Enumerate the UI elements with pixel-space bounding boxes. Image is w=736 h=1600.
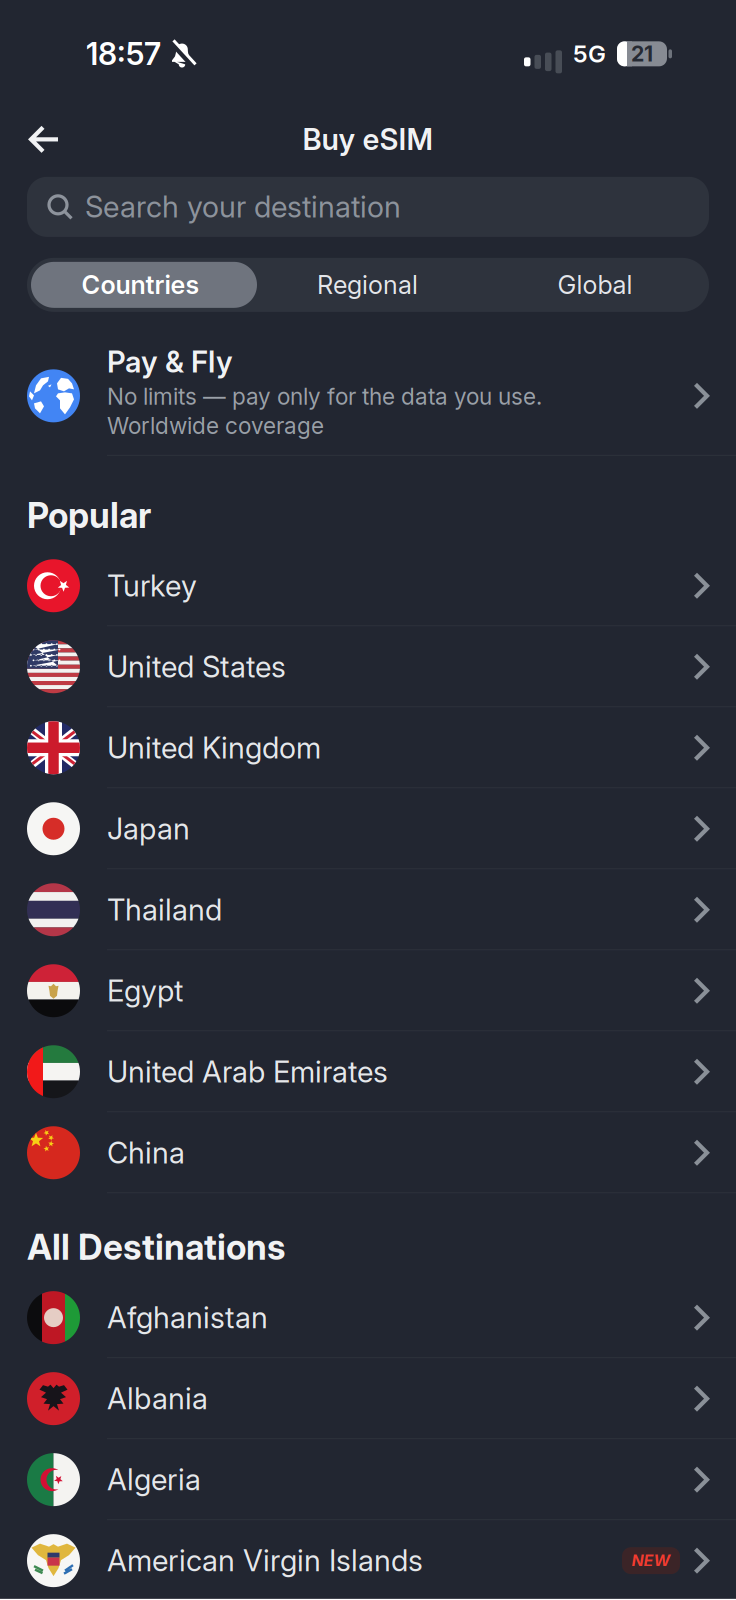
staticText: Global: [557, 270, 632, 300]
button[interactable]: China: [0, 1112, 736, 1193]
button[interactable]: American Virgin Islands: [0, 1520, 736, 1600]
button[interactable]: Thailand: [0, 869, 736, 950]
staticText: Pay & Fly: [107, 345, 233, 379]
button[interactable]: Algeria: [0, 1439, 736, 1520]
staticText: United Arab Emirates: [107, 1054, 388, 1089]
staticText: Afghanistan: [107, 1300, 268, 1335]
button[interactable]: Egypt: [0, 950, 736, 1031]
button[interactable]: Afghanistan: [0, 1277, 736, 1358]
staticText: Popular: [27, 495, 151, 536]
button[interactable]: Japan: [0, 788, 736, 869]
staticText: NEW: [631, 1551, 670, 1570]
staticText: China: [107, 1135, 185, 1170]
staticText: Egypt: [107, 973, 183, 1008]
button[interactable]: Regional: [254, 270, 481, 300]
staticText: United States: [107, 649, 286, 684]
staticText: Turkey: [107, 568, 197, 603]
staticText: Japan: [107, 811, 190, 846]
staticText: 21: [631, 41, 653, 66]
staticText: Worldwide coverage: [107, 412, 324, 439]
staticText: United Kingdom: [107, 730, 321, 765]
staticText: 5G: [573, 40, 606, 68]
staticText: Countries: [81, 270, 199, 300]
staticText: Regional: [317, 270, 418, 300]
staticText: No limits — pay only for the data you us…: [107, 383, 542, 410]
staticText: Search your destination: [85, 189, 401, 224]
staticText: Albania: [107, 1381, 208, 1416]
button[interactable]: Search your destination: [0, 177, 736, 237]
button[interactable]: Albania: [0, 1358, 736, 1439]
staticText: American Virgin Islands: [107, 1543, 423, 1578]
button[interactable]: United States: [0, 626, 736, 707]
button[interactable]: Back: [0, 125, 59, 154]
staticText: 18:57: [86, 36, 161, 72]
staticText: Buy eSIM: [302, 122, 433, 157]
button[interactable]: United Arab Emirates: [0, 1031, 736, 1112]
staticText: Algeria: [107, 1462, 201, 1497]
staticText: Thailand: [107, 892, 222, 927]
button[interactable]: Turkey: [0, 545, 736, 626]
button[interactable]: Global: [481, 270, 709, 300]
button[interactable]: United Kingdom: [0, 707, 736, 788]
button[interactable]: Pay & Fly: [0, 337, 736, 456]
staticText: All Destinations: [27, 1227, 285, 1268]
button[interactable]: Countries: [27, 270, 254, 300]
